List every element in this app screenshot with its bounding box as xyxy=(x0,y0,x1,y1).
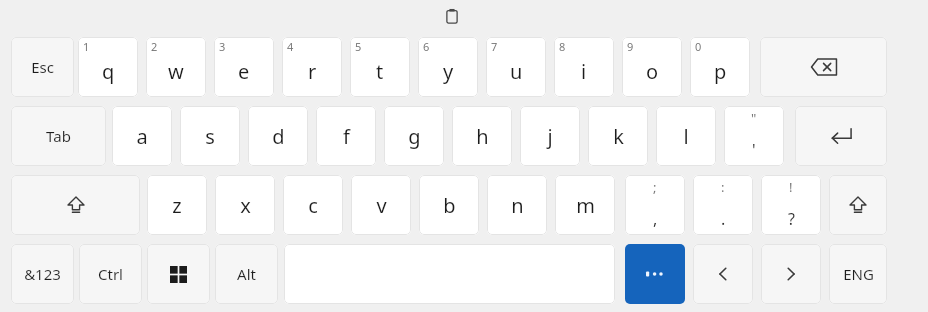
staticText: 4 xyxy=(287,39,294,54)
button[interactable]: Previous xyxy=(693,244,753,304)
staticText: 0 xyxy=(695,39,702,54)
button[interactable]: r xyxy=(282,37,342,97)
staticText: 1 xyxy=(83,39,90,54)
button[interactable]: Language xyxy=(829,244,887,304)
button[interactable]: o xyxy=(622,37,682,97)
button[interactable]: Backspace xyxy=(760,37,887,97)
staticText: Ctrl xyxy=(98,264,123,284)
button[interactable]: Clipboard xyxy=(440,4,464,28)
staticText: ENG xyxy=(843,264,874,284)
staticText: c xyxy=(308,192,318,219)
button[interactable]: p xyxy=(690,37,750,97)
staticText: ! xyxy=(789,178,793,196)
button[interactable]: Symbols xyxy=(11,244,74,304)
button[interactable]: z xyxy=(147,175,207,235)
button[interactable]: g xyxy=(384,106,444,166)
staticText: s xyxy=(205,123,215,150)
button[interactable]: Windows xyxy=(147,244,210,304)
button[interactable]: c xyxy=(283,175,343,235)
staticText: e xyxy=(238,58,250,85)
button[interactable]: , xyxy=(625,175,685,235)
staticText: j xyxy=(547,123,553,150)
button[interactable]: q xyxy=(78,37,138,97)
button[interactable]: Control xyxy=(79,244,142,304)
staticText: l xyxy=(683,123,689,150)
staticText: d xyxy=(272,123,285,150)
staticText: n xyxy=(511,192,524,219)
staticText: 8 xyxy=(559,39,566,54)
staticText: " xyxy=(751,109,757,127)
button[interactable]: Space xyxy=(284,244,615,304)
staticText: y xyxy=(443,58,454,85)
button[interactable]: m xyxy=(555,175,615,235)
staticText: : xyxy=(721,178,725,196)
staticText: Alt xyxy=(237,264,256,284)
staticText: u xyxy=(510,58,523,85)
staticText: g xyxy=(408,123,421,150)
button[interactable]: ' xyxy=(724,106,784,166)
staticText: ? xyxy=(788,208,795,230)
button[interactable]: . xyxy=(693,175,753,235)
staticText: i xyxy=(581,58,587,85)
staticText: ; xyxy=(653,178,657,196)
staticText: 3 xyxy=(219,39,226,54)
staticText: Esc xyxy=(31,57,54,77)
button[interactable]: Next xyxy=(761,244,821,304)
button[interactable]: Shift xyxy=(829,175,887,235)
staticText: ' xyxy=(752,139,756,161)
staticText: a xyxy=(136,123,148,150)
button[interactable]: l xyxy=(656,106,716,166)
button[interactable]: j xyxy=(520,106,580,166)
staticText: o xyxy=(646,58,659,85)
staticText: m xyxy=(576,192,595,219)
staticText: r xyxy=(308,58,317,85)
button[interactable]: d xyxy=(248,106,308,166)
button[interactable]: Emoji xyxy=(625,244,685,304)
staticText: z xyxy=(172,192,182,219)
button[interactable]: ? xyxy=(761,175,821,235)
staticText: 9 xyxy=(627,39,634,54)
button[interactable]: v xyxy=(351,175,411,235)
staticText: . xyxy=(721,208,726,230)
staticText: k xyxy=(613,123,624,150)
button[interactable]: Alt xyxy=(215,244,278,304)
staticText: &123 xyxy=(24,264,61,284)
button[interactable]: b xyxy=(419,175,479,235)
button[interactable]: f xyxy=(316,106,376,166)
button[interactable]: a xyxy=(112,106,172,166)
staticText: t xyxy=(376,58,384,85)
staticText: , xyxy=(653,208,658,230)
button[interactable]: k xyxy=(588,106,648,166)
button[interactable]: Enter xyxy=(795,106,887,166)
button[interactable]: s xyxy=(180,106,240,166)
button[interactable]: w xyxy=(146,37,206,97)
button[interactable]: i xyxy=(554,37,614,97)
button[interactable]: n xyxy=(487,175,547,235)
staticText: h xyxy=(476,123,489,150)
button[interactable]: y xyxy=(418,37,478,97)
button[interactable]: Shift xyxy=(11,175,140,235)
button[interactable]: t xyxy=(350,37,410,97)
button[interactable]: Tab xyxy=(11,106,106,166)
staticText: 6 xyxy=(423,39,430,54)
button[interactable]: e xyxy=(214,37,274,97)
staticText: x xyxy=(240,192,251,219)
staticText: Tab xyxy=(46,126,71,146)
button[interactable]: h xyxy=(452,106,512,166)
staticText: w xyxy=(168,58,184,85)
staticText: v xyxy=(376,192,387,219)
button[interactable]: x xyxy=(215,175,275,235)
staticText: 2 xyxy=(151,39,158,54)
button[interactable]: Escape xyxy=(11,37,74,97)
staticText: f xyxy=(343,123,350,150)
staticText: p xyxy=(714,58,727,85)
staticText: 7 xyxy=(491,39,498,54)
staticText: b xyxy=(443,192,456,219)
staticText: 5 xyxy=(355,39,362,54)
button[interactable]: u xyxy=(486,37,546,97)
staticText: q xyxy=(102,58,115,85)
